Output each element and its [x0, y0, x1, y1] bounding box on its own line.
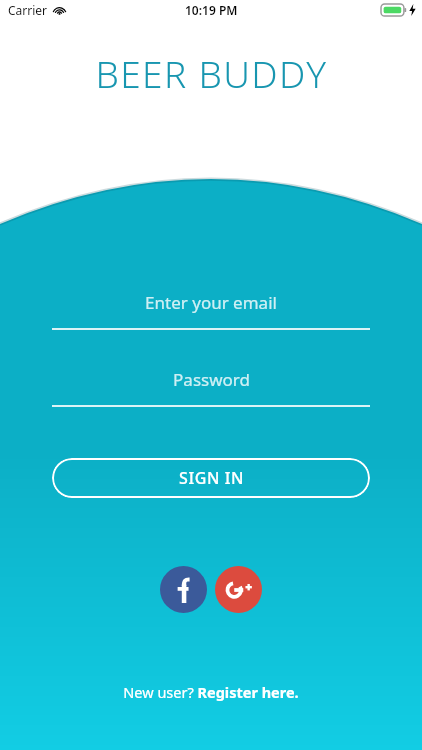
staticText: Password [173, 368, 250, 391]
staticText: SIGN IN [179, 467, 244, 489]
staticText: New user? Register here. [123, 682, 299, 702]
staticText: BEER BUDDY [95, 48, 328, 98]
button[interactable]: SIGN IN [52, 458, 370, 498]
button[interactable]: Password [52, 362, 370, 407]
staticText: 10:19 PM [185, 2, 238, 18]
staticText: Enter your email [145, 291, 277, 314]
staticText: Carrier [8, 2, 48, 18]
button[interactable]: Sign in with Facebook [160, 566, 207, 613]
button[interactable]: Sign in with Google Plus [215, 566, 262, 613]
button[interactable]: New user? Register here. [111, 676, 311, 708]
button[interactable]: Enter your email [52, 285, 370, 330]
